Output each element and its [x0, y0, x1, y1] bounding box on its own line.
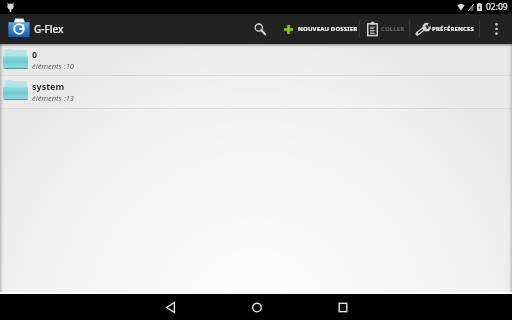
staticText: G-Flex	[34, 22, 64, 36]
button[interactable]: COLLER	[360, 14, 409, 44]
button[interactable]: Recents	[338, 294, 348, 320]
staticText: PRÉFÉRENCES	[432, 25, 475, 33]
button[interactable]: NOUVEAU DOSSIER	[280, 14, 359, 44]
button[interactable]: Back	[166, 294, 176, 320]
button[interactable]: Search	[248, 14, 272, 44]
staticText: 0	[32, 48, 38, 60]
button[interactable]: More options	[480, 14, 512, 44]
button[interactable]: Home	[252, 294, 262, 320]
staticText: 02:09	[486, 1, 508, 13]
staticText: éléments :10	[32, 61, 74, 71]
button[interactable]: G-Flex	[0, 14, 70, 44]
staticText: éléments :13	[32, 93, 74, 103]
staticText: NOUVEAU DOSSIER	[298, 25, 358, 33]
button[interactable]: 0	[0, 44, 512, 75]
button[interactable]: system	[0, 76, 512, 108]
staticText: COLLER	[381, 25, 405, 33]
button[interactable]: PRÉFÉRENCES	[410, 14, 479, 44]
staticText: system	[32, 80, 65, 92]
